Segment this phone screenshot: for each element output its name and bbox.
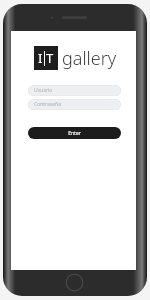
button[interactable]: Enter [28, 127, 121, 139]
staticText: gallery [62, 46, 117, 70]
staticText: Enter [68, 130, 81, 137]
staticText: Usuario [34, 87, 53, 94]
button[interactable]: Contraseña [28, 99, 121, 110]
staticText: T [46, 49, 54, 67]
staticText: Contraseña [34, 101, 61, 108]
staticText: I [38, 49, 43, 67]
button[interactable]: Usuario [28, 85, 121, 96]
